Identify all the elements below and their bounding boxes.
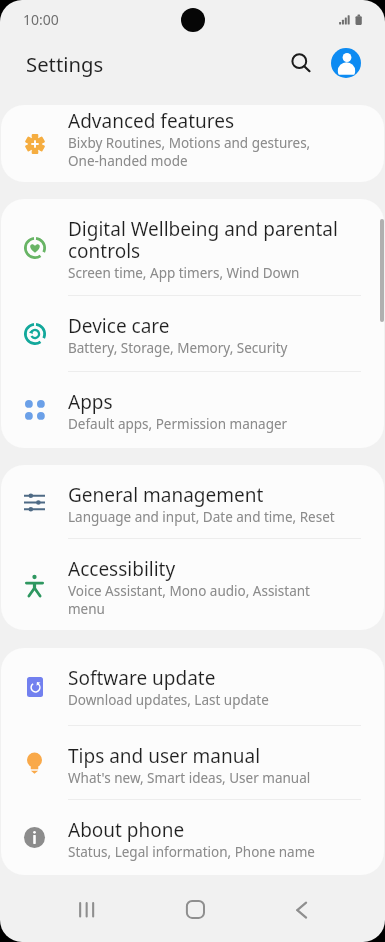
button[interactable]: Tips and user manual (1, 726, 384, 800)
button[interactable]: Apps (1, 372, 384, 448)
staticText: 10:00 (23, 10, 59, 29)
staticText: Apps (68, 389, 113, 415)
staticText: Device care (68, 313, 170, 339)
button[interactable]: Account (331, 48, 361, 78)
staticText: Tips and user manual (68, 743, 261, 769)
staticText: Battery, Storage, Memory, Security (68, 339, 288, 357)
staticText: Screen time, App timers, Wind Down (68, 264, 300, 282)
staticText: About phone (68, 817, 185, 843)
button[interactable]: Software update (1, 648, 384, 726)
staticText: Status, Legal information, Phone name (68, 843, 315, 861)
button[interactable]: Search (279, 41, 320, 82)
button[interactable]: Device care (1, 296, 384, 372)
staticText: General management (68, 482, 264, 508)
staticText: Download updates, Last update (68, 691, 269, 709)
button[interactable]: Back (277, 888, 327, 930)
staticText: Digital Wellbeing and parental controls (68, 216, 338, 264)
button[interactable]: Digital Wellbeing and parental controls (1, 199, 384, 296)
button[interactable]: Recent apps (61, 888, 111, 930)
button[interactable]: General management (1, 465, 384, 539)
staticText: Accessibility (68, 556, 176, 582)
staticText: Bixby Routines, Motions and gestures, On… (68, 134, 311, 170)
staticText: Settings (26, 50, 104, 78)
staticText: Software update (68, 665, 216, 691)
button[interactable]: Advanced features (1, 105, 384, 182)
staticText: Default apps, Permission manager (68, 415, 288, 433)
staticText: Voice Assistant, Mono audio, Assistant m… (68, 582, 310, 618)
staticText: What's new, Smart ideas, User manual (68, 769, 311, 787)
button[interactable]: Accessibility (1, 539, 384, 630)
staticText: Language and input, Date and time, Reset (68, 508, 335, 526)
button[interactable]: Home (170, 888, 220, 930)
button[interactable]: About phone (1, 800, 384, 875)
staticText: Advanced features (68, 108, 235, 134)
